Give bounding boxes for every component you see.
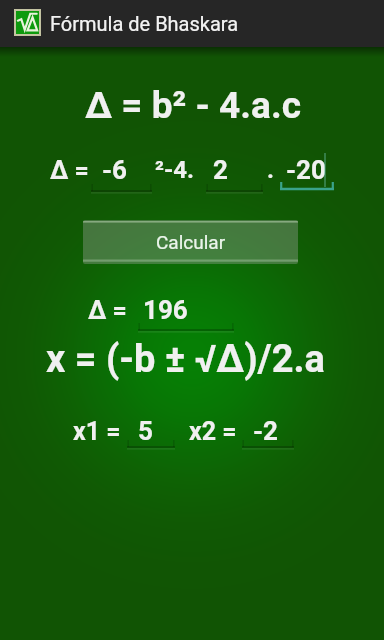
staticText: 196 <box>143 295 188 325</box>
staticText: x2 = <box>189 417 243 446</box>
button[interactable]: -2 <box>242 416 294 451</box>
staticText: ²-4. <box>155 156 195 184</box>
staticText: Calcular <box>156 231 226 253</box>
button[interactable]: 196 <box>138 295 234 334</box>
staticText: Δ = <box>50 156 96 185</box>
staticText: Δ = <box>88 296 134 325</box>
staticText: Δ = b² - 4.a.c <box>85 84 301 127</box>
staticText: x = (-b ± √Δ)/2.a <box>46 337 325 382</box>
button[interactable]: -6 <box>91 155 152 195</box>
button[interactable]: Calcular <box>83 220 298 264</box>
staticText: -6 <box>102 155 128 185</box>
button[interactable]: 2 <box>206 155 263 195</box>
button[interactable]: 5 <box>127 416 175 451</box>
staticText: . <box>267 156 274 184</box>
staticText: -2 <box>253 416 279 446</box>
staticText: 5 <box>138 416 153 446</box>
staticText: Fórmula de Bhaskara <box>50 12 239 35</box>
button[interactable]: -20 <box>280 155 334 193</box>
staticText: x1 = <box>73 417 127 446</box>
staticText: -20 <box>286 155 326 185</box>
other: Bhaskara formula app icon <box>16 11 39 34</box>
staticText: 2 <box>213 155 228 185</box>
